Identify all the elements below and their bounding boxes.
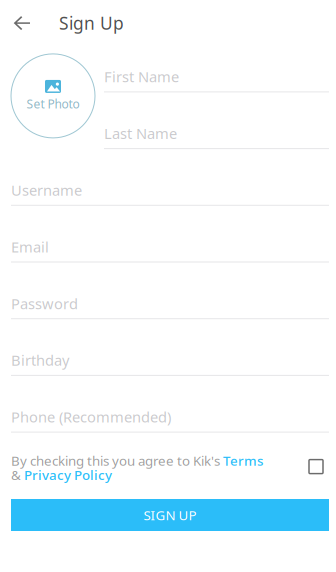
staticText: Sign Up (59, 11, 124, 34)
staticText: Phone (Recommended) (11, 407, 171, 427)
staticText: First Name (104, 67, 179, 86)
button[interactable]: Privacy Policy (24, 466, 112, 484)
staticText: Username (11, 180, 82, 200)
button[interactable]: Set Photo (10, 50, 94, 134)
staticText: Birthday (11, 350, 69, 370)
button[interactable]: Agree to Terms and Privacy Policy (303, 454, 329, 480)
staticText: By checking this you agree to Kik's (11, 452, 223, 469)
button[interactable]: Back (7, 8, 37, 38)
button[interactable]: SIGN UP (11, 499, 329, 531)
staticText: Privacy Policy (24, 466, 112, 484)
staticText: & (11, 466, 24, 484)
staticText: Password (11, 294, 78, 313)
staticText: Last Name (104, 124, 177, 143)
button[interactable]: Terms (223, 452, 263, 469)
staticText: Set Photo (26, 96, 79, 112)
staticText: Email (11, 237, 49, 256)
staticText: Terms (223, 452, 263, 469)
staticText: SIGN UP (143, 506, 196, 524)
